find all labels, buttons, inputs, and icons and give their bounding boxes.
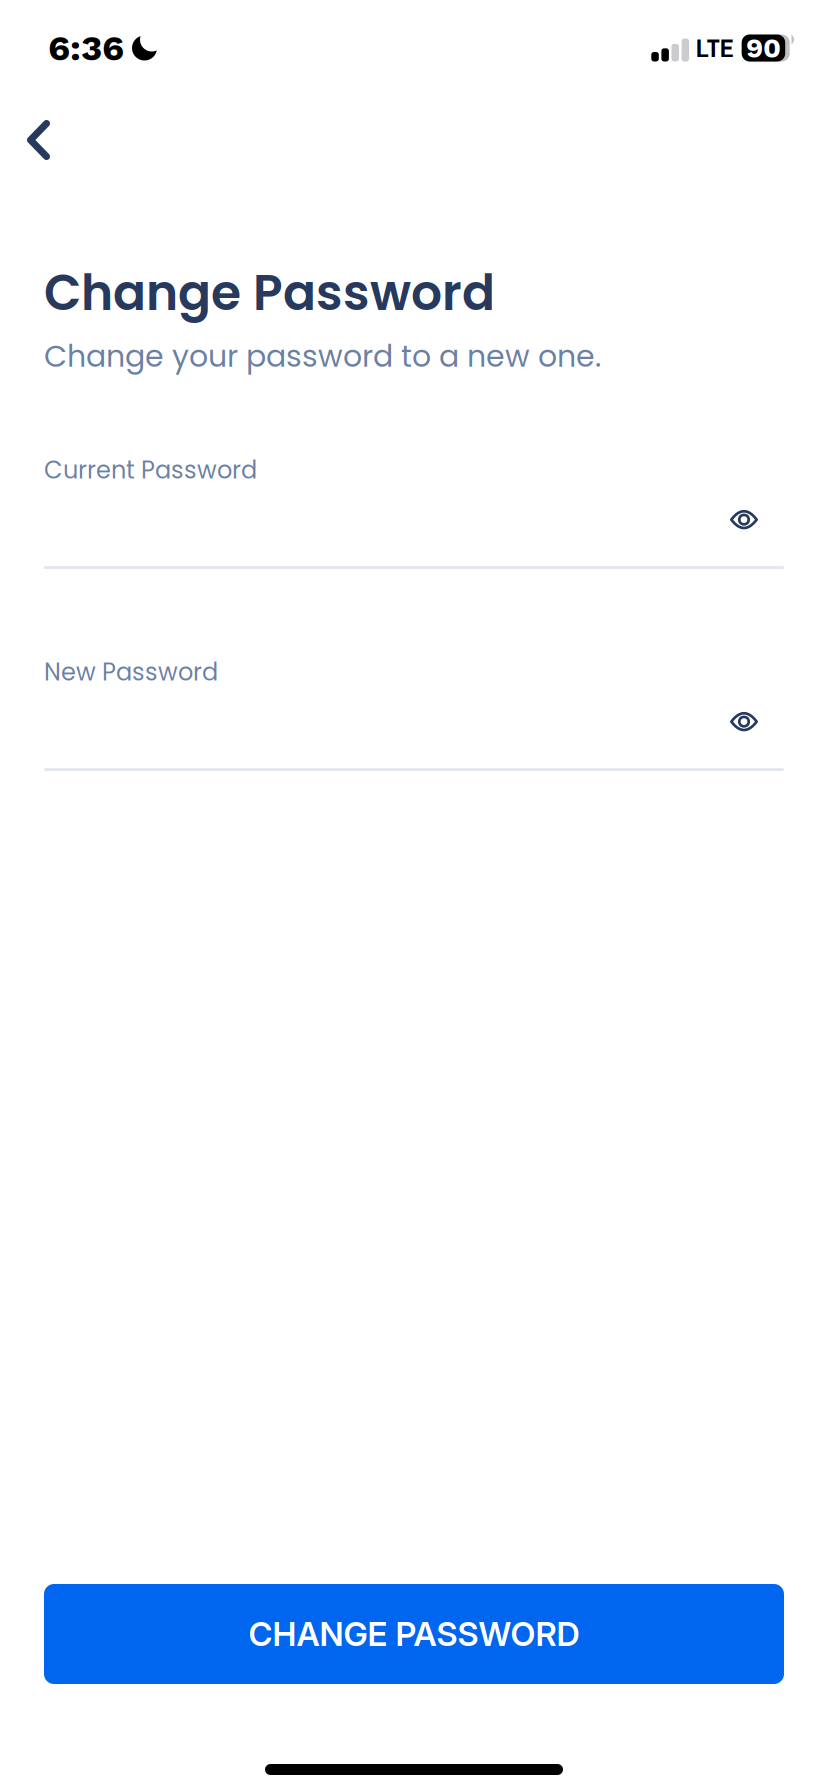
button[interactable]: Back bbox=[14, 116, 62, 164]
staticText: New Password bbox=[44, 655, 218, 689]
button[interactable]: Show password bbox=[704, 498, 784, 542]
staticText: Change your password to a new one. bbox=[44, 335, 601, 377]
staticText: Change Password bbox=[44, 259, 495, 327]
staticText: CHANGE PASSWORD bbox=[248, 1614, 579, 1654]
staticText: Current Password bbox=[44, 453, 257, 487]
button[interactable]: CHANGE PASSWORD bbox=[44, 1584, 784, 1684]
staticText: LTE bbox=[696, 30, 734, 65]
staticText: 6:36 bbox=[48, 27, 124, 69]
button[interactable]: Show password bbox=[704, 700, 784, 744]
staticText: 90 bbox=[746, 32, 781, 64]
